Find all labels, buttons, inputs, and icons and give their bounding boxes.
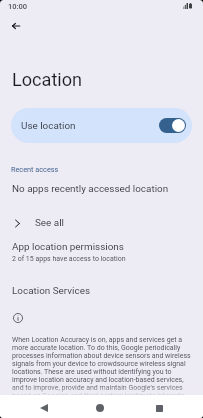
- button[interactable]: App location permissions: [0, 237, 203, 268]
- button[interactable]: Back: [32, 398, 56, 418]
- staticText: 10:00: [8, 2, 28, 11]
- staticText: When Location Accuracy is on, apps and s…: [12, 336, 191, 400]
- button[interactable]: See all: [0, 211, 203, 235]
- staticText: See all: [35, 217, 65, 229]
- staticText: 2 of 15 apps have access to location: [12, 255, 126, 263]
- staticText: No apps recently accessed location: [12, 183, 169, 195]
- button[interactable]: Home: [88, 398, 112, 418]
- button[interactable]: Use location: [159, 118, 186, 133]
- button[interactable]: Use location: [11, 108, 192, 143]
- staticText: App location permissions: [12, 241, 124, 253]
- button[interactable]: Recent apps: [147, 398, 171, 418]
- staticText: Location Services: [12, 285, 90, 297]
- staticText: Recent access: [11, 165, 59, 174]
- staticText: Location: [12, 69, 83, 90]
- staticText: Use location: [21, 120, 76, 132]
- button[interactable]: Navigate up: [4, 14, 28, 38]
